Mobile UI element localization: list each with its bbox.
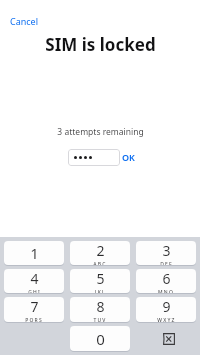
staticText: 7 <box>30 297 39 316</box>
button[interactable] <box>68 149 120 166</box>
button[interactable]: 3 <box>133 239 199 267</box>
staticText: PQRS <box>25 317 43 322</box>
button[interactable]: OK <box>114 148 139 166</box>
button[interactable]: Cancel <box>8 13 41 29</box>
staticText: 1 <box>30 243 39 263</box>
button[interactable]: 4 <box>1 267 67 295</box>
staticText: 8 <box>96 297 105 316</box>
staticText: 3 <box>162 241 171 260</box>
button[interactable]: 8 <box>67 295 133 324</box>
staticText: 2 <box>96 241 105 260</box>
staticText: OK <box>122 151 135 163</box>
staticText: 6 <box>162 269 171 288</box>
staticText: TUV <box>93 317 107 322</box>
button[interactable]: Delete <box>133 324 199 353</box>
button[interactable]: 2 <box>67 239 133 267</box>
staticText: 4 <box>30 269 39 288</box>
button[interactable]: 1 <box>1 239 67 267</box>
staticText: 5 <box>96 269 105 288</box>
staticText: MNO <box>158 289 174 293</box>
staticText: DEF <box>160 261 173 265</box>
staticText: Cancel <box>10 15 39 27</box>
staticText: SIM is locked <box>45 33 156 56</box>
staticText: GHI <box>28 289 41 293</box>
staticText: JKL <box>95 289 106 293</box>
staticText: ABC <box>93 261 107 265</box>
button[interactable]: 9 <box>133 295 199 324</box>
button[interactable]: 5 <box>67 267 133 295</box>
staticText: 0 <box>96 329 105 349</box>
staticText: 3 attempts remaining <box>57 126 144 138</box>
staticText: 9 <box>162 297 171 316</box>
staticText: WXYZ <box>157 317 176 322</box>
button[interactable]: 6 <box>133 267 199 295</box>
button[interactable]: 0 <box>67 324 133 353</box>
button[interactable]: 7 <box>1 295 67 324</box>
